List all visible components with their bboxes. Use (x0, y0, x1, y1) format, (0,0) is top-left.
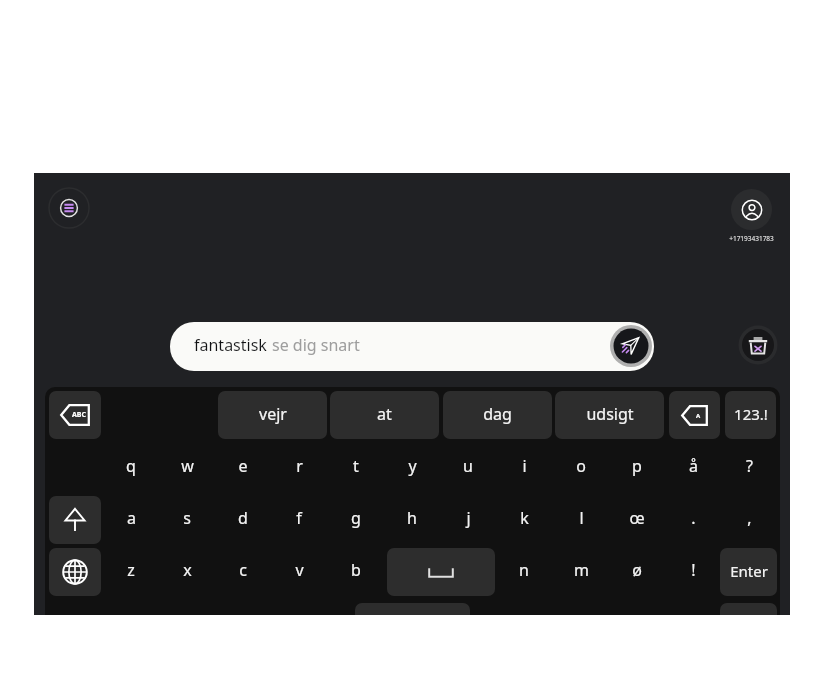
button[interactable]: z (105, 547, 157, 595)
staticText: t (353, 455, 359, 477)
staticText: ABC (72, 410, 86, 420)
staticText: k (520, 507, 529, 529)
button[interactable]: g (330, 495, 382, 543)
staticText: q (126, 455, 136, 477)
button[interactable]: ? (723, 443, 775, 491)
button[interactable]: x (161, 547, 213, 595)
button[interactable]: f (273, 495, 325, 543)
button[interactable]: ø (611, 547, 663, 595)
button[interactable]: a (105, 495, 157, 543)
staticText: b (351, 559, 361, 581)
button[interactable]: v (273, 547, 325, 595)
button[interactable]: i (498, 443, 550, 491)
button[interactable]: å (667, 443, 719, 491)
button[interactable]: at (330, 391, 439, 439)
button[interactable]: e (217, 443, 269, 491)
button[interactable]: . (667, 495, 719, 543)
staticText: j (466, 507, 471, 529)
staticText: c (239, 559, 247, 581)
staticText: i (522, 455, 527, 477)
button[interactable]: 123.! (725, 391, 776, 439)
button[interactable]: dag (443, 391, 552, 439)
staticText: se dig snart (272, 334, 360, 356)
button[interactable]: Enter (720, 548, 777, 596)
button[interactable]: p (611, 443, 663, 491)
staticText: dag (483, 403, 512, 425)
staticText: at (377, 403, 392, 425)
button[interactable]: c (217, 547, 269, 595)
button[interactable]: Space (387, 548, 495, 596)
button[interactable]: Shift (49, 496, 101, 544)
button[interactable]: Delete (736, 323, 780, 367)
button[interactable]: q (105, 443, 157, 491)
staticText: 123.! (734, 404, 768, 424)
staticText: A (696, 412, 701, 420)
button[interactable]: , (723, 495, 775, 543)
staticText: ! (691, 559, 696, 581)
staticText: ø (632, 559, 642, 581)
button[interactable]: More keys (355, 603, 470, 615)
staticText: Enter (730, 561, 768, 581)
button[interactable]: Menu (47, 186, 91, 230)
staticText: f (296, 507, 302, 529)
button[interactable]: u (442, 443, 494, 491)
button[interactable]: l (555, 495, 607, 543)
button[interactable]: Change language (49, 548, 101, 596)
staticText: . (691, 507, 696, 529)
staticText: p (632, 455, 642, 477)
button[interactable]: d (217, 495, 269, 543)
button[interactable]: ! (667, 547, 719, 595)
staticText: y (408, 455, 417, 477)
button[interactable]: udsigt (555, 391, 664, 439)
staticText: o (576, 455, 586, 477)
staticText: e (238, 455, 248, 477)
staticText: udsigt (586, 403, 634, 425)
staticText: œ (629, 507, 645, 529)
button[interactable]: Account (731, 189, 772, 230)
button[interactable]: Backspace (669, 391, 720, 439)
button[interactable]: t (330, 443, 382, 491)
button[interactable]: Message input (170, 322, 654, 371)
button[interactable]: o (555, 443, 607, 491)
staticText: a (127, 507, 136, 529)
staticText: , (747, 507, 752, 529)
button[interactable]: k (498, 495, 550, 543)
button[interactable]: s (161, 495, 213, 543)
button[interactable]: More (720, 603, 777, 615)
button[interactable]: j (442, 495, 494, 543)
staticText: r (296, 455, 303, 477)
staticText: w (181, 455, 194, 477)
staticText: l (579, 507, 584, 529)
button[interactable]: m (555, 547, 607, 595)
staticText: s (183, 507, 191, 529)
staticText: fantastisk (194, 334, 272, 356)
staticText: z (127, 559, 135, 581)
staticText: å (689, 455, 698, 477)
staticText: g (351, 507, 361, 529)
button[interactable]: w (161, 443, 213, 491)
staticText: vejr (259, 403, 287, 425)
staticText: u (463, 455, 473, 477)
staticText: +17193431783 (729, 234, 774, 243)
staticText: v (295, 559, 304, 581)
staticText: d (238, 507, 248, 529)
staticText: ? (746, 455, 753, 477)
button[interactable]: vejr (218, 391, 327, 439)
button[interactable]: Switch keyboard layout (49, 391, 101, 439)
button[interactable]: Send (609, 324, 653, 368)
staticText: h (407, 507, 417, 529)
button[interactable]: b (330, 547, 382, 595)
staticText: n (519, 559, 529, 581)
staticText: m (574, 559, 589, 581)
button[interactable]: n (498, 547, 550, 595)
button[interactable]: y (386, 443, 438, 491)
staticText: x (183, 559, 192, 581)
button[interactable]: r (273, 443, 325, 491)
button[interactable]: h (386, 495, 438, 543)
button[interactable]: œ (611, 495, 663, 543)
